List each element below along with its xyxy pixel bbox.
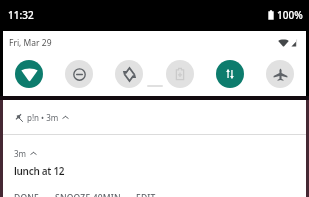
- button[interactable]: Battery saver: [166, 60, 194, 88]
- button[interactable]: Airplane mode: [266, 60, 294, 88]
- staticText: lunch at 12: [14, 164, 65, 178]
- button[interactable]: Wi-Fi: [15, 60, 43, 88]
- staticText: 11:32: [8, 8, 34, 22]
- staticText: 3m: [14, 148, 27, 159]
- staticText: EDIT: [136, 192, 156, 197]
- staticText: Fri, Mar 29: [9, 37, 52, 49]
- button[interactable]: DONE: [14, 192, 40, 197]
- button[interactable]: Mobile data: [216, 60, 244, 88]
- button[interactable]: SNOOZE 40MIN: [55, 192, 121, 197]
- button[interactable]: p!n • 3m: [3, 100, 306, 134]
- button[interactable]: 3m: [3, 135, 306, 197]
- staticText: 100%: [277, 8, 303, 22]
- button[interactable]: Auto rotate: [115, 60, 143, 88]
- staticText: p!n • 3m: [27, 112, 59, 123]
- button[interactable]: Do not disturb: [65, 60, 93, 88]
- button[interactable]: EDIT: [136, 192, 156, 197]
- staticText: SNOOZE 40MIN: [55, 192, 121, 197]
- staticText: DONE: [14, 192, 40, 197]
